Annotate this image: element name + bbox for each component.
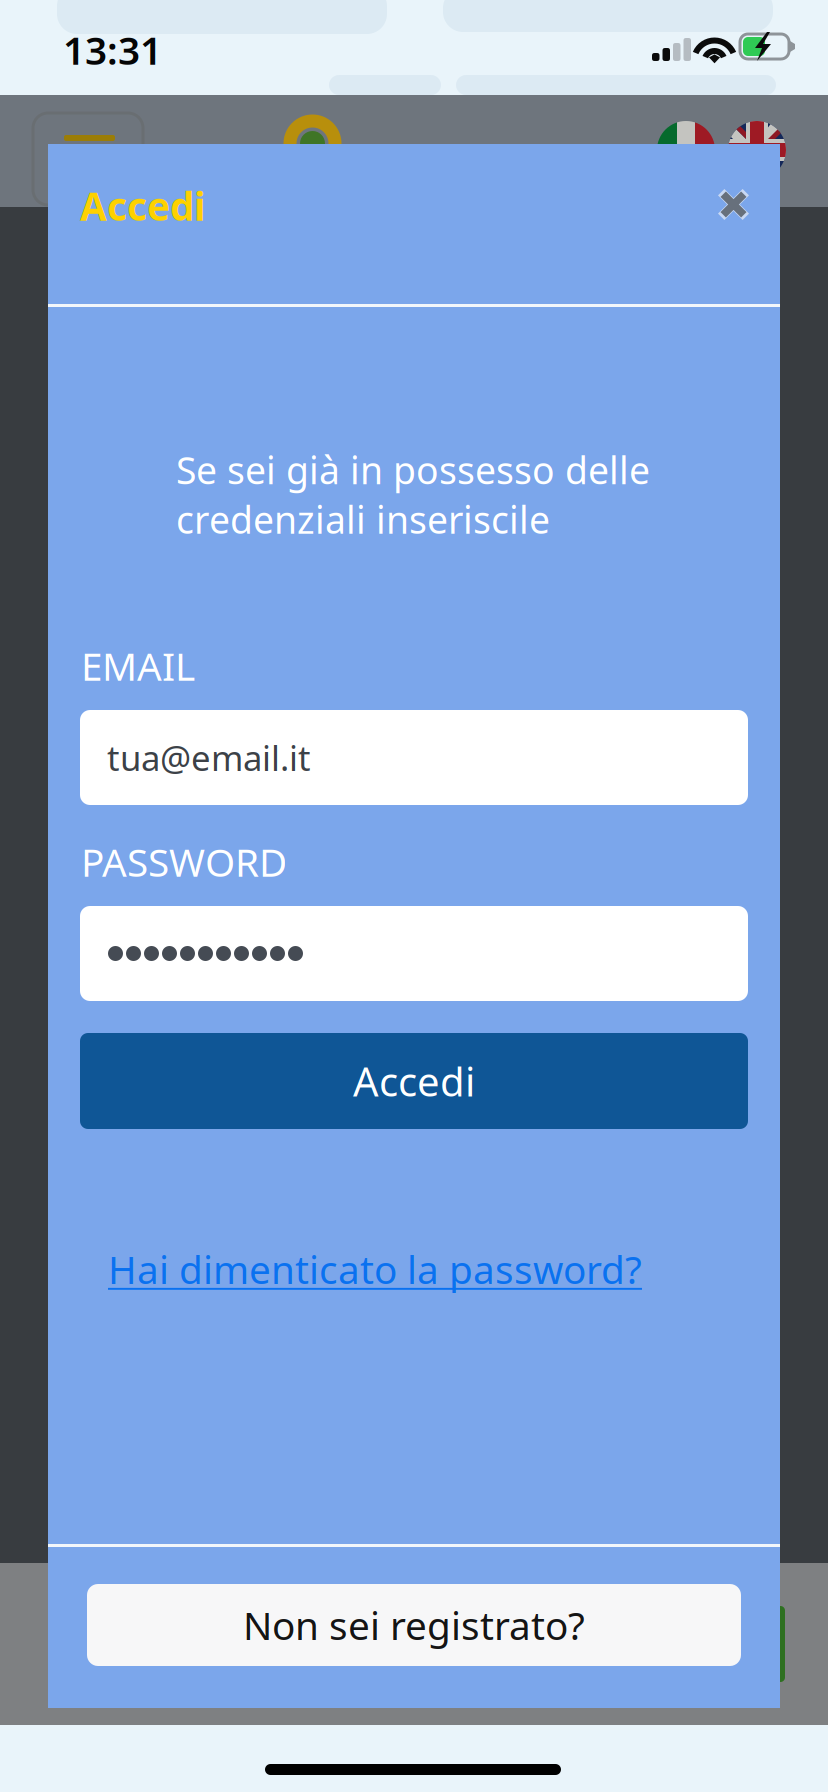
button[interactable]: Hai dimenticato la password? [108,1241,668,1297]
button[interactable]: Chiudi [694,165,772,243]
staticText: Accedi [80,180,206,231]
staticText: tua@email.it [107,734,311,780]
button[interactable]: Accedi [80,1033,748,1129]
staticText: Non sei registrato? [243,1599,585,1651]
staticText: EMAIL [81,640,195,691]
staticText: Accedi [353,1054,475,1107]
staticText: Se sei già in possesso delle credenziali… [176,445,650,544]
staticText: Hai dimenticato la password? [108,1243,642,1295]
staticText: 13:31 [63,24,162,75]
button[interactable]: Non sei registrato? [87,1584,741,1666]
staticText: PASSWORD [81,836,287,887]
